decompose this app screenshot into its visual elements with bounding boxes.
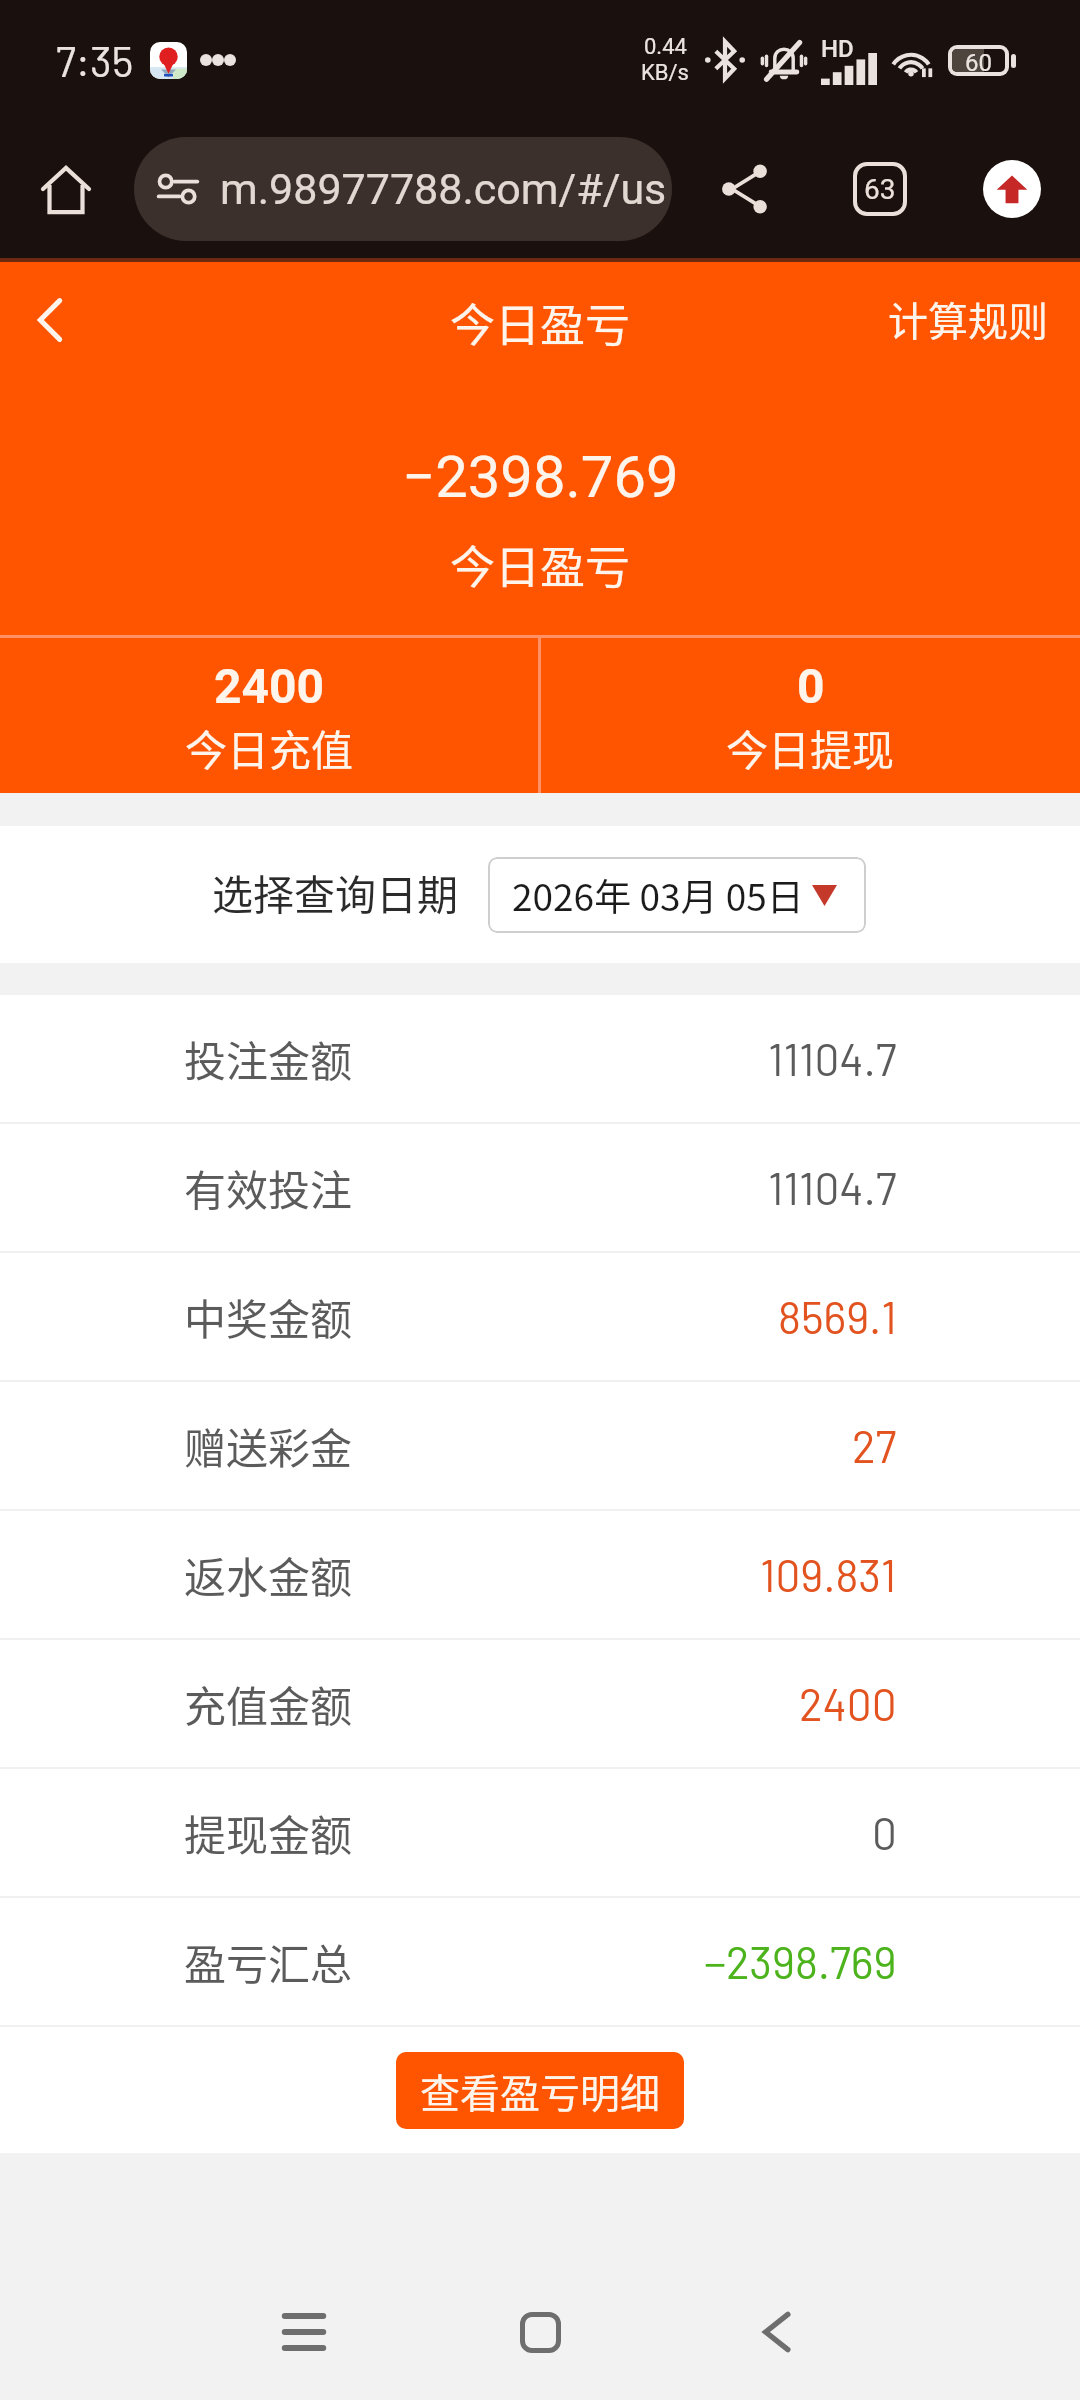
staticText: 8569.1 [778,1290,897,1343]
staticText: 返水金额 [184,1544,353,1605]
staticText: 选择查询日期 [212,862,458,921]
staticText: 中奖金额 [184,1286,353,1347]
button[interactable]: 中奖金额 [0,1253,1080,1380]
button[interactable]: Back [10,280,90,360]
staticText: 今日盈亏 [450,532,631,597]
staticText: 11104.7 [768,1032,897,1085]
staticText: 今日提现 [726,717,895,778]
button[interactable]: m.98977788.com/#/us [134,137,672,241]
staticText: 盈亏汇总 [184,1931,353,1992]
staticText: 赠送彩金 [184,1415,353,1476]
staticText: 查看盈亏明细 [420,2062,660,2120]
staticText: 有效投注 [184,1157,353,1218]
button[interactable]: Home [16,139,116,239]
staticText: −2398.769 [402,443,679,511]
button[interactable]: 返水金额 [0,1511,1080,1638]
staticText: 投注金额 [184,1028,353,1089]
button[interactable]: 提现金额 [0,1769,1080,1896]
staticText: 63 [864,173,896,206]
staticText: 7:35 [56,35,134,85]
button[interactable]: Home [485,2277,595,2387]
button[interactable]: 计算规则 [874,280,1062,358]
button[interactable]: 有效投注 [0,1124,1080,1251]
staticText: 2400 [214,658,325,714]
button[interactable]: 充值金额 [0,1640,1080,1767]
staticText: 109.831 [760,1548,897,1601]
button[interactable]: Back [721,2277,831,2387]
button[interactable]: 投注金额 [0,995,1080,1122]
staticText: 0.44 [644,34,687,60]
button[interactable]: 盈亏汇总 [0,1898,1080,2025]
staticText: 60 [965,49,992,72]
button[interactable]: Tabs [830,139,930,239]
button[interactable]: Scroll to top [962,139,1062,239]
staticText: 今日充值 [185,717,354,778]
staticText: 0 [872,1806,897,1859]
staticText: HD [821,35,854,63]
staticText: 充值金额 [184,1673,353,1734]
button[interactable]: Recent apps [249,2277,359,2387]
button[interactable]: 0 [541,638,1080,793]
staticText: 今日盈亏 [450,290,631,355]
staticText: 27 [852,1419,897,1472]
button[interactable]: 查看盈亏明细 [396,2052,684,2129]
staticText: 计算规则 [888,290,1048,348]
staticText: −2398.769 [704,1935,897,1988]
button[interactable]: 赠送彩金 [0,1382,1080,1509]
staticText: KB/s [641,60,689,86]
staticText: 2400 [799,1677,897,1730]
button[interactable]: 2026年 03月 05日 [488,857,866,933]
button[interactable]: 2400 [0,638,538,793]
staticText: 2026年 03月 05日 [512,868,804,922]
staticText: 0 [797,658,825,714]
staticText: m.98977788.com/#/us [220,164,667,214]
staticText: 11104.7 [768,1161,897,1214]
button[interactable]: Share [695,139,795,239]
staticText: 提现金额 [184,1802,353,1863]
